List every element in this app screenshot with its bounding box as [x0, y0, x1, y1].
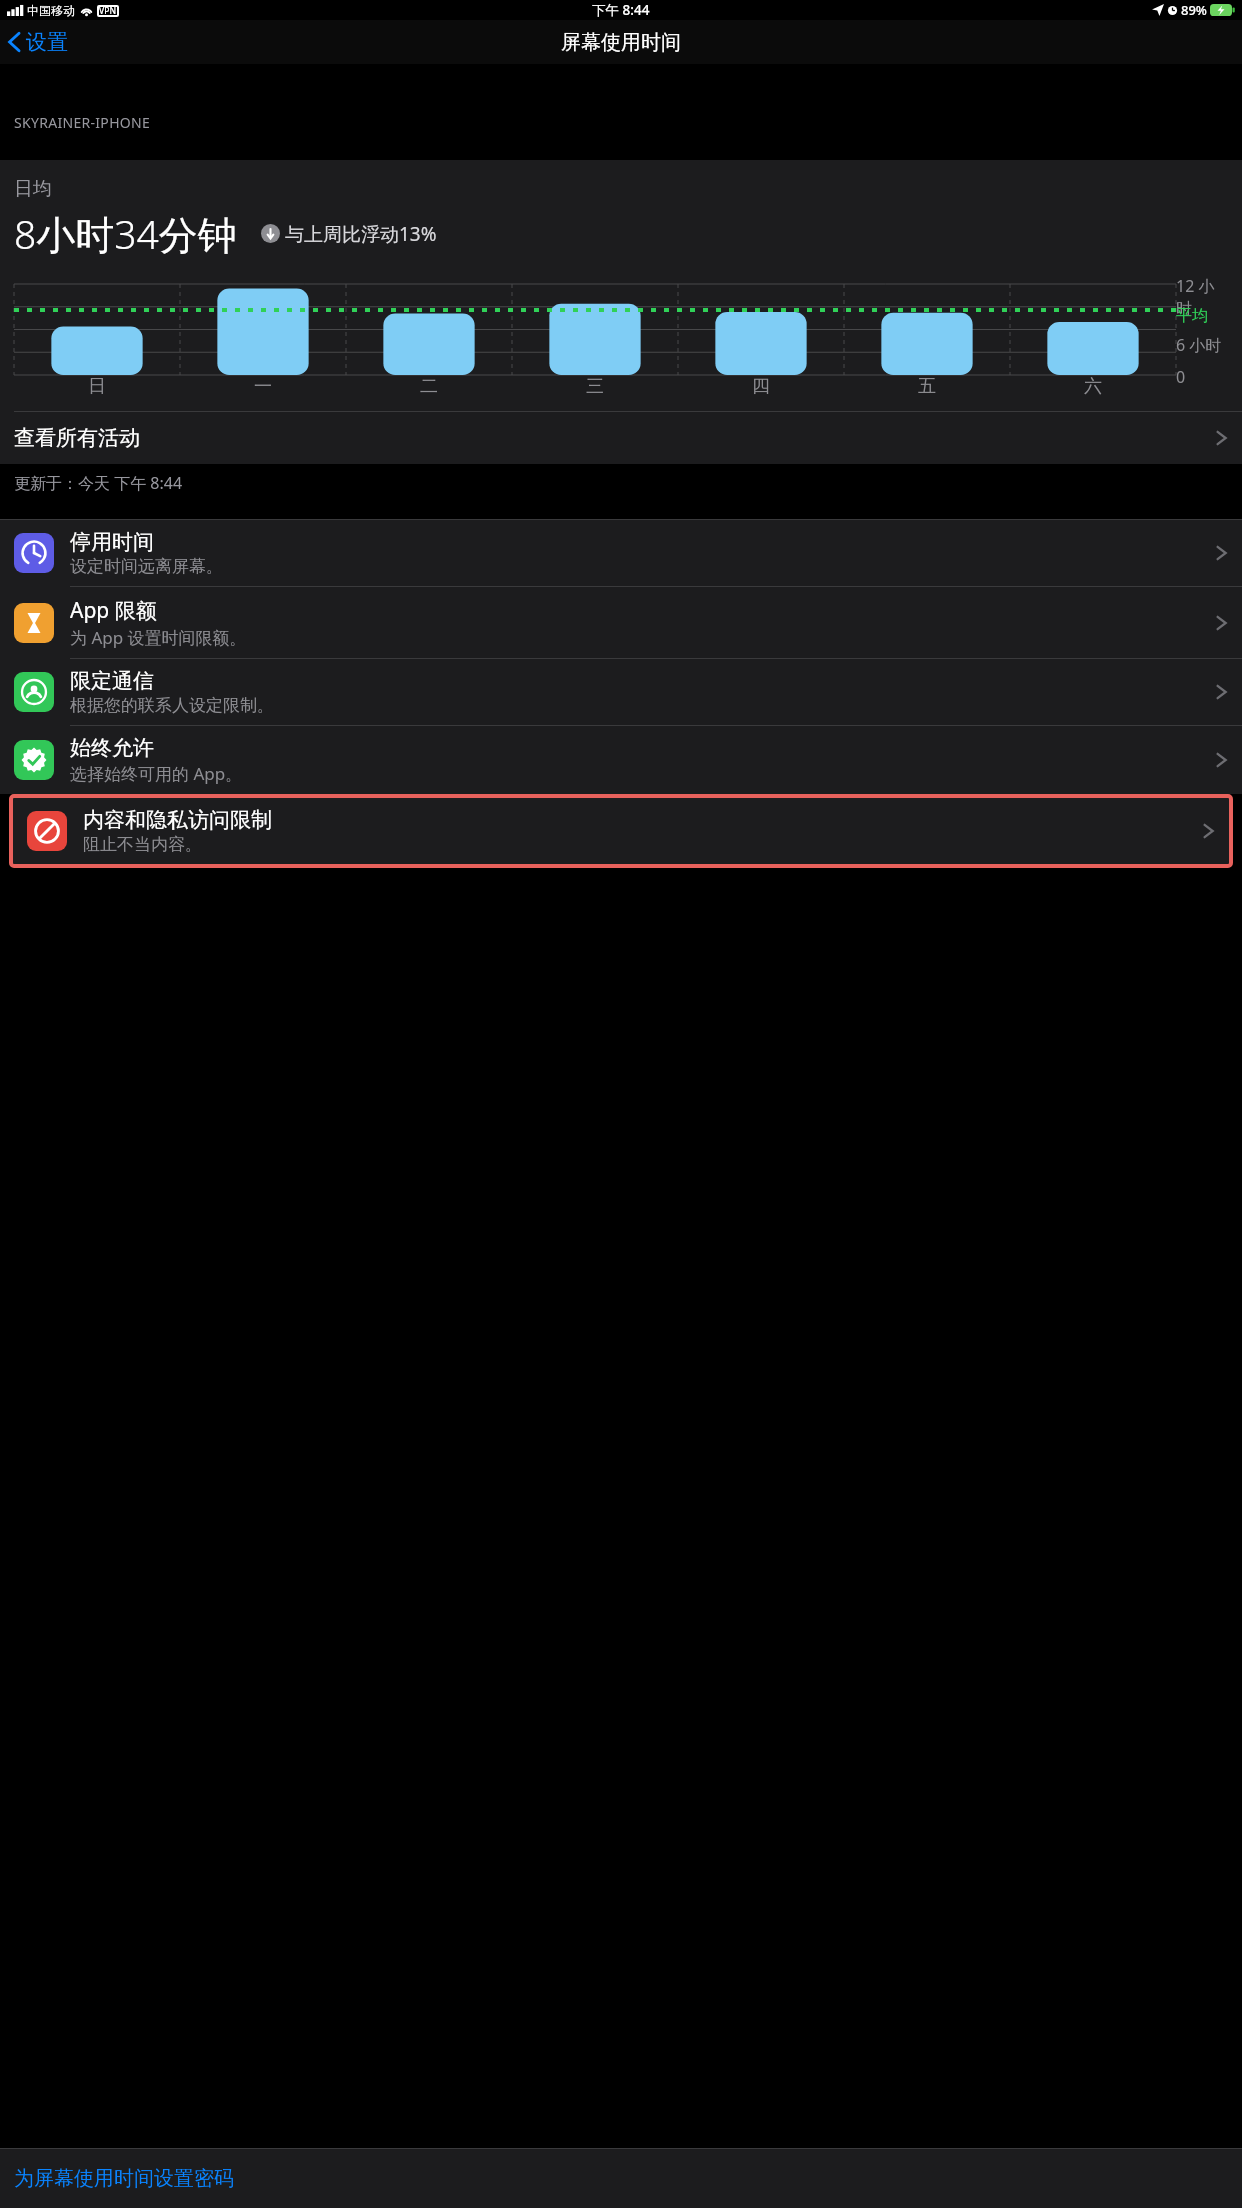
other: 打开: [1215, 749, 1228, 771]
button[interactable]: 限定通信: [0, 659, 1242, 726]
staticText: 平均: [1176, 306, 1208, 326]
staticText: 中国移动: [27, 3, 75, 18]
staticText: 限定通信: [70, 668, 154, 694]
staticText: 为 App 设置时间限额。: [70, 626, 247, 649]
other: 打开: [1215, 612, 1228, 634]
staticText: 三: [586, 375, 604, 398]
staticText: VPN: [99, 5, 117, 17]
staticText: 与上周比浮动13%: [285, 221, 437, 247]
staticText: 六: [1084, 375, 1102, 398]
staticText: 内容和隐私访问限制: [83, 807, 272, 833]
staticText: 二: [420, 375, 438, 398]
staticText: 查看所有活动: [14, 425, 140, 451]
staticText: 始终允许: [70, 735, 154, 761]
button[interactable]: 停用时间: [0, 520, 1242, 587]
staticText: 日均: [14, 177, 52, 201]
button[interactable]: 查看所有活动: [0, 412, 1242, 464]
staticText: 设置: [26, 29, 68, 55]
staticText: 设定时间远离屏幕。: [70, 556, 223, 577]
staticText: 0: [1176, 366, 1186, 388]
staticText: SKYRAINER-IPHONE: [14, 113, 151, 132]
staticText: 更新于：今天 下午 8:44: [14, 472, 183, 494]
staticText: 屏幕使用时间: [561, 30, 681, 55]
staticText: 8小时34分钟: [14, 207, 237, 260]
staticText: 根据您的联系人设定限制。: [70, 695, 274, 716]
staticText: 89%: [1181, 1, 1207, 19]
staticText: 为屏幕使用时间设置密码: [14, 2166, 234, 2191]
button[interactable]: App 限额: [0, 587, 1242, 659]
other: 打开: [1215, 427, 1228, 449]
staticText: 停用时间: [70, 529, 154, 555]
button[interactable]: 内容和隐私访问限制: [13, 798, 1229, 864]
staticText: 选择始终可用的 App。: [70, 762, 243, 785]
staticText: 一: [254, 375, 272, 398]
staticText: 四: [752, 375, 770, 398]
button[interactable]: 为屏幕使用时间设置密码: [0, 2149, 1242, 2208]
staticText: 6 小时: [1176, 334, 1222, 356]
staticText: 阻止不当内容。: [83, 834, 202, 855]
button[interactable]: 始终允许: [0, 726, 1242, 794]
staticText: 日: [88, 375, 106, 398]
other: 打开: [1215, 542, 1228, 564]
staticText: 五: [918, 375, 936, 398]
other: 打开: [1215, 681, 1228, 703]
button[interactable]: 设置: [0, 29, 76, 55]
staticText: 12 小时: [1176, 275, 1228, 319]
staticText: 下午 8:44: [592, 1, 650, 19]
staticText: App 限额: [70, 596, 157, 625]
other: 打开: [1202, 820, 1215, 842]
